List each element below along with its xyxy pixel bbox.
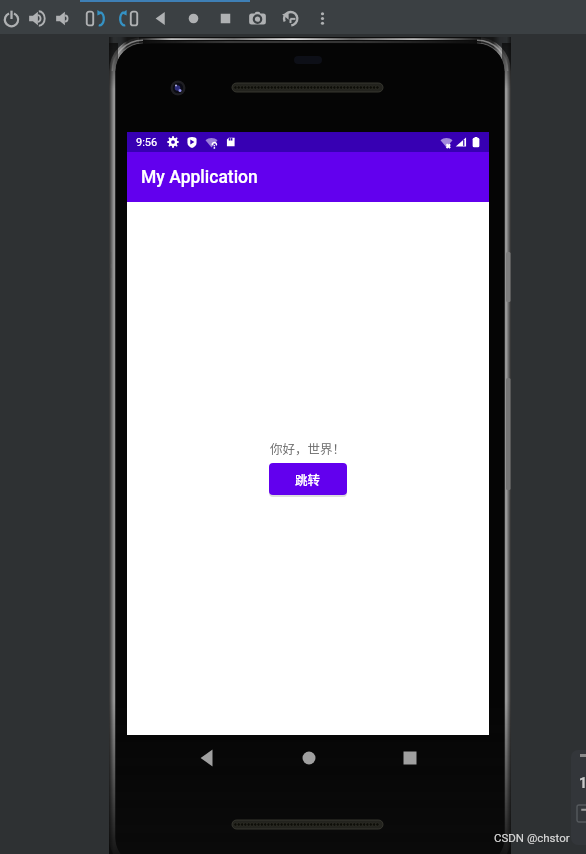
button[interactable]: Overview	[212, 5, 238, 31]
button[interactable]: Back	[184, 735, 229, 780]
button[interactable]: Tool window	[571, 750, 586, 845]
button[interactable]: Volume down	[51, 5, 77, 31]
button[interactable]: Power	[0, 5, 24, 31]
staticText: 9:56	[136, 136, 158, 149]
button[interactable]: Volume up	[24, 5, 50, 31]
button[interactable]: Rotate right	[115, 5, 141, 31]
staticText: CSDN @chstor	[494, 831, 570, 844]
button[interactable]: Back	[147, 5, 173, 31]
staticText: 跳转	[295, 470, 321, 488]
button[interactable]: Screenshot	[244, 5, 270, 31]
button[interactable]: Overview	[387, 735, 432, 780]
staticText: 你好，世界！	[270, 439, 346, 457]
button[interactable]: Home	[286, 735, 331, 780]
button[interactable]: More options	[309, 5, 335, 31]
button[interactable]: Rotate left	[82, 5, 108, 31]
staticText: My Application	[141, 167, 258, 188]
button[interactable]: Home	[180, 5, 206, 31]
button[interactable]: 跳转	[269, 463, 347, 495]
button[interactable]: Record and playback	[277, 5, 303, 31]
staticText: 1	[579, 775, 586, 791]
